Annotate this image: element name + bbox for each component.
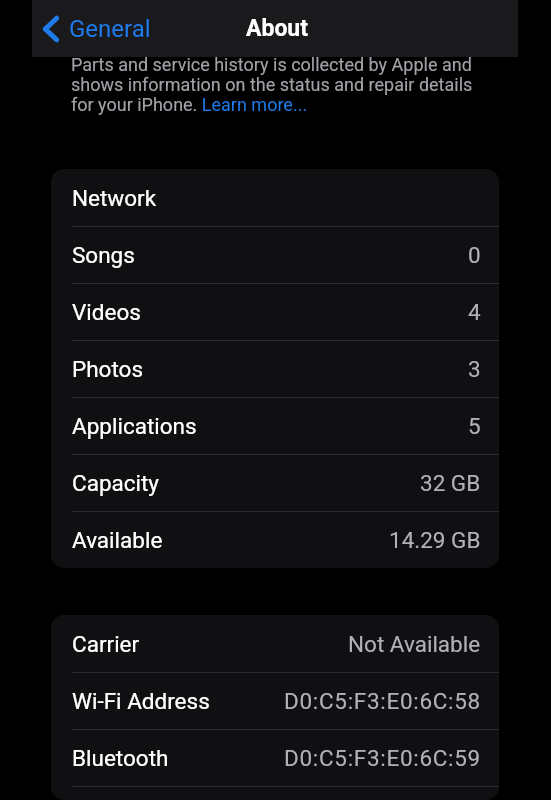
staticText: Videos <box>72 299 141 325</box>
staticText: Songs <box>72 242 135 268</box>
staticText: 4 <box>468 299 481 325</box>
staticText: Bluetooth <box>72 745 169 771</box>
staticText: Capacity <box>72 470 160 496</box>
button[interactable] <box>51 786 499 800</box>
button[interactable]: Carrier <box>51 615 499 672</box>
button[interactable]: Network <box>51 169 499 226</box>
button[interactable]: Learn more <box>202 94 307 114</box>
staticText: About <box>246 15 309 42</box>
staticText: Applications <box>72 413 197 439</box>
staticText: 32 GB <box>420 470 481 496</box>
staticText: Carrier <box>72 631 140 657</box>
staticText: Not Available <box>348 631 481 657</box>
staticText: Wi-Fi Address <box>72 688 210 714</box>
button[interactable]: Videos <box>51 283 499 340</box>
staticText: 5 <box>468 413 481 439</box>
button[interactable]: Applications <box>51 397 499 454</box>
button[interactable]: Back to General <box>32 7 161 51</box>
button[interactable]: Bluetooth <box>51 729 499 786</box>
button[interactable]: Available <box>51 511 499 568</box>
staticText: Available <box>72 527 163 553</box>
staticText: 0 <box>468 242 481 268</box>
staticText: General <box>69 15 151 43</box>
staticText: 3 <box>468 356 481 382</box>
staticText: Network <box>72 185 157 211</box>
staticText: D0:C5:F3:E0:6C:58 <box>284 688 481 714</box>
staticText: Parts and service history is collected b… <box>71 54 489 115</box>
button[interactable]: Photos <box>51 340 499 397</box>
button[interactable]: Songs <box>51 226 499 283</box>
staticText: D0:C5:F3:E0:6C:59 <box>284 745 481 771</box>
button[interactable]: Wi-Fi Address <box>51 672 499 729</box>
staticText: Photos <box>72 356 144 382</box>
staticText: 14.29 GB <box>389 527 481 553</box>
button[interactable]: Capacity <box>51 454 499 511</box>
